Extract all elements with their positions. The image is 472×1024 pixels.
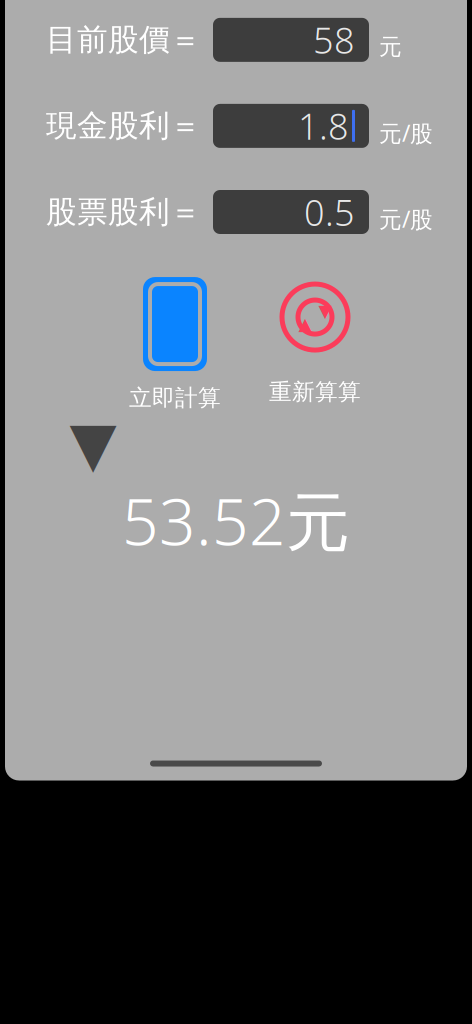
staticText: ▼ bbox=[318, 301, 331, 321]
staticText: 股票股利＝ bbox=[46, 193, 201, 231]
staticText: 現金股利＝ bbox=[46, 107, 201, 145]
button[interactable]: 1.8 bbox=[213, 104, 369, 148]
button[interactable]: ▲ bbox=[245, 282, 385, 406]
staticText: ▲ bbox=[298, 314, 311, 334]
staticText: 目前股價＝ bbox=[46, 21, 201, 59]
staticText: 58 bbox=[313, 16, 355, 64]
staticText: 元/股 bbox=[379, 118, 433, 148]
staticText: 重新算算 bbox=[269, 378, 361, 406]
button[interactable]: 立即計算 bbox=[105, 276, 245, 412]
staticText: ▼ bbox=[69, 409, 116, 479]
staticText: 0.5 bbox=[304, 188, 355, 236]
staticText: 元/股 bbox=[379, 204, 433, 234]
button[interactable]: 58 bbox=[213, 18, 369, 62]
staticText: 53.52元 bbox=[122, 478, 350, 563]
staticText: 元 bbox=[379, 33, 402, 61]
staticText: 立即計算 bbox=[129, 384, 221, 412]
button[interactable]: 0.5 bbox=[213, 190, 369, 234]
staticText: 1.8 bbox=[298, 102, 349, 150]
